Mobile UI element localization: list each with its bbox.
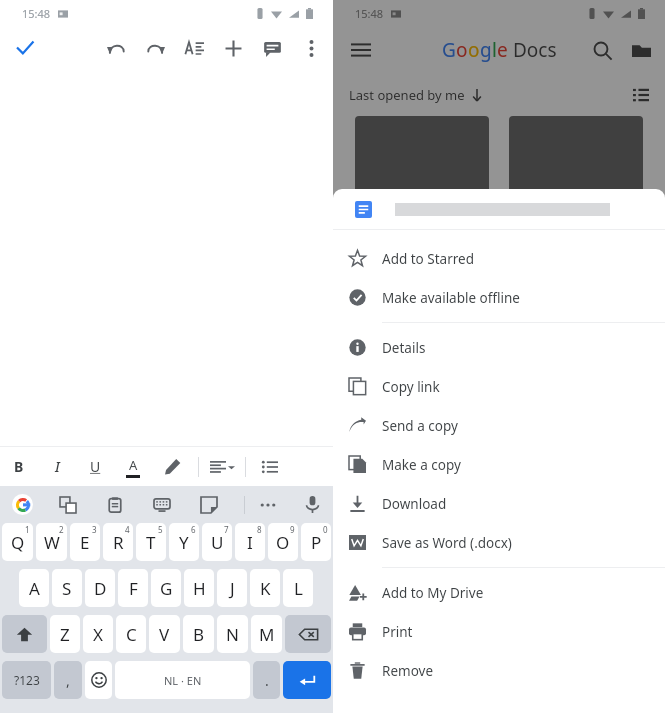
button[interactable]: R: [103, 523, 133, 561]
button[interactable]: Google: [0, 486, 44, 523]
staticText: P: [311, 531, 322, 554]
staticText: G: [160, 577, 173, 600]
staticText: 9: [290, 524, 295, 535]
button[interactable]: I: [235, 523, 265, 561]
button[interactable]: Space: NL EN: [115, 661, 250, 699]
button[interactable]: Z: [50, 615, 80, 653]
button[interactable]: Print: [333, 612, 665, 651]
button[interactable]: Q: [2, 523, 33, 561]
staticText: B: [193, 623, 205, 646]
staticText: Y: [179, 531, 189, 554]
button[interactable]: Align: [199, 447, 245, 486]
staticText: G: [442, 37, 456, 63]
button[interactable]: U: [202, 523, 232, 561]
button[interactable]: P: [301, 523, 331, 561]
button[interactable]: Save as Word (.docx): [333, 523, 665, 562]
button[interactable]: G: [151, 569, 181, 607]
button[interactable]: Y: [169, 523, 199, 561]
button[interactable]: F: [118, 569, 148, 607]
button[interactable]: More: [245, 486, 291, 523]
button[interactable]: Make available offline: [333, 278, 665, 317]
button[interactable]: Emoji: [85, 661, 112, 699]
button[interactable]: Download: [333, 484, 665, 523]
button[interactable]: Keyboard settings: [138, 486, 185, 523]
button[interactable]: B: [183, 615, 214, 653]
staticText: U: [90, 457, 101, 476]
staticText: Z: [60, 623, 70, 646]
button[interactable]: K: [250, 569, 280, 607]
staticText: T: [146, 531, 156, 554]
button[interactable]: Comments: [253, 29, 292, 68]
button[interactable]: D: [85, 569, 115, 607]
button[interactable]: E: [70, 523, 100, 561]
button[interactable]: Add to My Drive: [333, 573, 665, 612]
button[interactable]: A: [19, 569, 49, 607]
staticText: 7: [224, 524, 229, 535]
button[interactable]: Copy link: [333, 367, 665, 406]
staticText: C: [126, 623, 137, 646]
button[interactable]: Translate: [44, 486, 91, 523]
staticText: 8: [257, 524, 262, 535]
button[interactable]: Sticker: [185, 486, 232, 523]
staticText: N: [226, 623, 239, 646]
button[interactable]: H: [184, 569, 214, 607]
button[interactable]: X: [83, 615, 113, 653]
staticText: .: [265, 671, 269, 690]
button[interactable]: Add to Starred: [333, 239, 665, 278]
staticText: U: [211, 531, 224, 554]
staticText: Make a copy: [382, 456, 461, 474]
button[interactable]: List: [246, 447, 294, 486]
button[interactable]: Bold: [0, 447, 38, 486]
button[interactable]: L: [283, 569, 313, 607]
button[interactable]: Backspace: [285, 615, 331, 653]
button[interactable]: Insert: [214, 29, 253, 68]
button[interactable]: Send a copy: [333, 406, 665, 445]
button[interactable]: Comma: [54, 661, 82, 699]
button[interactable]: Shift: [2, 615, 47, 653]
button[interactable]: Enter: [283, 661, 331, 699]
staticText: D: [94, 577, 107, 600]
staticText: A: [129, 456, 138, 474]
button[interactable]: Highlight: [152, 447, 192, 486]
staticText: Docs: [508, 37, 557, 63]
staticText: Print: [382, 623, 413, 641]
button[interactable]: Make a copy: [333, 445, 665, 484]
staticText: ?123: [14, 672, 40, 688]
button[interactable]: Voice input: [291, 486, 333, 523]
staticText: l: [492, 37, 497, 63]
button[interactable]: S: [52, 569, 82, 607]
button[interactable]: W: [36, 523, 67, 561]
staticText: Make available offline: [382, 289, 520, 307]
staticText: K: [260, 577, 271, 600]
button[interactable]: Redo: [136, 29, 175, 68]
staticText: X: [93, 623, 103, 646]
button[interactable]: J: [217, 569, 247, 607]
button[interactable]: Italic: [38, 447, 76, 486]
button[interactable]: O: [268, 523, 298, 561]
button[interactable]: M: [251, 615, 282, 653]
button[interactable]: Remove: [333, 651, 665, 690]
staticText: F: [129, 577, 138, 600]
staticText: E: [80, 531, 90, 554]
button[interactable]: More options: [292, 29, 331, 68]
staticText: 6: [191, 524, 196, 535]
button[interactable]: Text colour: [114, 447, 152, 486]
button[interactable]: Period: [253, 661, 280, 699]
button[interactable]: Details: [333, 328, 665, 367]
button[interactable]: Underline: [76, 447, 114, 486]
button[interactable]: Text formatting: [175, 29, 214, 68]
staticText: Save as Word (.docx): [382, 534, 512, 552]
staticText: Remove: [382, 662, 434, 680]
button[interactable]: Done: [6, 29, 44, 67]
button[interactable]: N: [217, 615, 248, 653]
button[interactable]: T: [136, 523, 166, 561]
button[interactable]: V: [149, 615, 180, 653]
button[interactable]: Undo: [97, 29, 136, 68]
button[interactable]: C: [116, 615, 146, 653]
staticText: e: [497, 37, 508, 63]
staticText: J: [230, 577, 235, 600]
staticText: 1: [25, 524, 30, 535]
button[interactable]: Clipboard: [91, 486, 138, 523]
button[interactable]: Symbols: [2, 661, 51, 699]
staticText: 15:48: [355, 6, 384, 21]
